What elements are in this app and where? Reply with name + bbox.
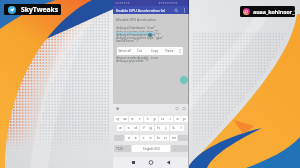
staticText: #hwui.render.disable n.on xyxy=(116,55,158,59)
button[interactable]: b xyxy=(155,135,162,141)
staticText: c xyxy=(142,135,145,141)
staticText: Select all xyxy=(117,49,132,53)
staticText: u xyxy=(161,116,164,122)
staticText: #Enable GPU Acceleration xyxy=(116,17,157,21)
button[interactable]: auaa_kohinoor_1 xyxy=(240,6,295,17)
staticText: Copy xyxy=(147,49,162,53)
staticText: v xyxy=(149,135,152,141)
staticText: n xyxy=(164,135,167,141)
button[interactable]: Save xyxy=(180,76,188,84)
button[interactable]: w xyxy=(121,116,128,122)
staticText: i xyxy=(169,116,171,122)
button[interactable]: ?123 xyxy=(114,145,124,152)
button[interactable]: g xyxy=(147,125,154,131)
button[interactable]: SkyTweaks xyxy=(4,4,61,15)
staticText: b xyxy=(157,135,160,141)
staticText: s xyxy=(127,125,130,131)
staticText: auaa_kohinoor_1 xyxy=(253,8,295,15)
staticText: debug.sf.hardware "true" xyxy=(116,25,156,29)
staticText: h xyxy=(157,125,160,131)
staticText: d xyxy=(134,125,137,131)
staticText: debug.system.statusbar "1" xyxy=(116,29,159,33)
button[interactable]: v xyxy=(147,135,154,141)
staticText: o xyxy=(176,116,179,122)
staticText: j xyxy=(165,125,167,131)
button[interactable]: p xyxy=(181,116,188,122)
button[interactable]: x xyxy=(132,135,139,141)
staticText: g xyxy=(149,125,152,131)
staticText: f xyxy=(143,125,145,131)
staticText: Enable GPU Acceleration (e) xyxy=(116,8,166,13)
staticText: debug.egl.profiler "1" xyxy=(116,58,150,62)
button[interactable]: c xyxy=(140,135,147,141)
staticText: p xyxy=(183,116,186,122)
staticText: debug.composition.type "gpu" xyxy=(116,35,164,39)
button[interactable]: a xyxy=(117,125,124,131)
button[interactable]: m xyxy=(170,135,177,141)
staticText: r xyxy=(139,116,141,122)
staticText: . xyxy=(174,146,176,152)
button[interactable]: s xyxy=(125,125,132,131)
staticText: debug.sf.hwrotation.type "1" xyxy=(116,32,161,36)
staticText: w xyxy=(123,116,127,122)
staticText: e xyxy=(131,116,134,122)
staticText: z xyxy=(128,135,130,141)
button[interactable]: h xyxy=(155,125,162,131)
staticText: y xyxy=(153,116,156,122)
button[interactable]: r xyxy=(136,116,143,122)
staticText: hwOd.force "1" xyxy=(116,38,140,42)
button[interactable]: k xyxy=(170,125,177,131)
staticText: x xyxy=(134,135,137,141)
staticText: Cut xyxy=(132,49,147,53)
button[interactable]: d xyxy=(132,125,139,131)
button[interactable]: y xyxy=(151,116,158,122)
button[interactable]: z xyxy=(125,135,132,141)
button[interactable]: English (US) xyxy=(132,145,170,152)
staticText: l xyxy=(180,125,182,131)
button[interactable]: j xyxy=(162,125,169,131)
button[interactable]: o xyxy=(174,116,181,122)
staticText: English (US) xyxy=(143,147,160,151)
button[interactable]: l xyxy=(177,125,184,131)
button[interactable]: q xyxy=(114,116,121,122)
staticText: m xyxy=(172,135,176,141)
staticText: ?123 xyxy=(116,147,123,151)
staticText: SkyTweaks xyxy=(21,5,59,14)
button[interactable]: f xyxy=(140,125,147,131)
staticText: k xyxy=(172,125,175,131)
staticText: t xyxy=(147,116,149,122)
staticText: a xyxy=(119,125,122,131)
button[interactable]: i xyxy=(166,116,173,122)
button[interactable]: u xyxy=(159,116,166,122)
button[interactable]: Select all xyxy=(117,47,183,55)
staticText: Paste xyxy=(162,49,177,53)
button[interactable]: n xyxy=(162,135,169,141)
button[interactable]: t xyxy=(144,116,151,122)
staticText: q xyxy=(116,116,119,122)
button[interactable]: e xyxy=(129,116,136,122)
